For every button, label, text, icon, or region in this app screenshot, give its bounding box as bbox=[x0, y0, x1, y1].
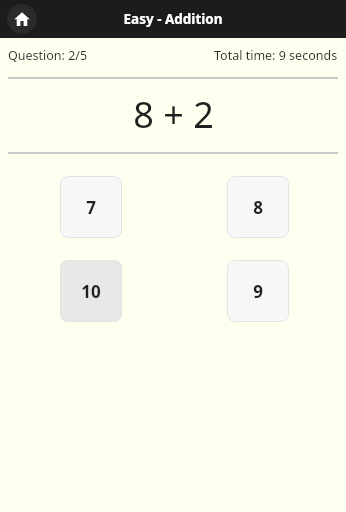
staticText: 8 + 2 bbox=[133, 90, 214, 139]
staticText: 10 bbox=[81, 280, 101, 303]
staticText: Total time: 9 seconds bbox=[214, 47, 338, 64]
button[interactable]: 7 bbox=[60, 176, 122, 238]
button[interactable]: 8 bbox=[227, 176, 289, 238]
button[interactable]: 9 bbox=[227, 260, 289, 322]
staticText: Question: 2/5 bbox=[8, 47, 88, 64]
button[interactable]: Home bbox=[7, 4, 37, 34]
staticText: Easy - Addition bbox=[123, 10, 223, 28]
button[interactable]: 10 bbox=[60, 260, 122, 322]
staticText: 9 bbox=[253, 280, 263, 303]
staticText: 8 bbox=[253, 196, 263, 219]
staticText: 7 bbox=[86, 196, 96, 219]
